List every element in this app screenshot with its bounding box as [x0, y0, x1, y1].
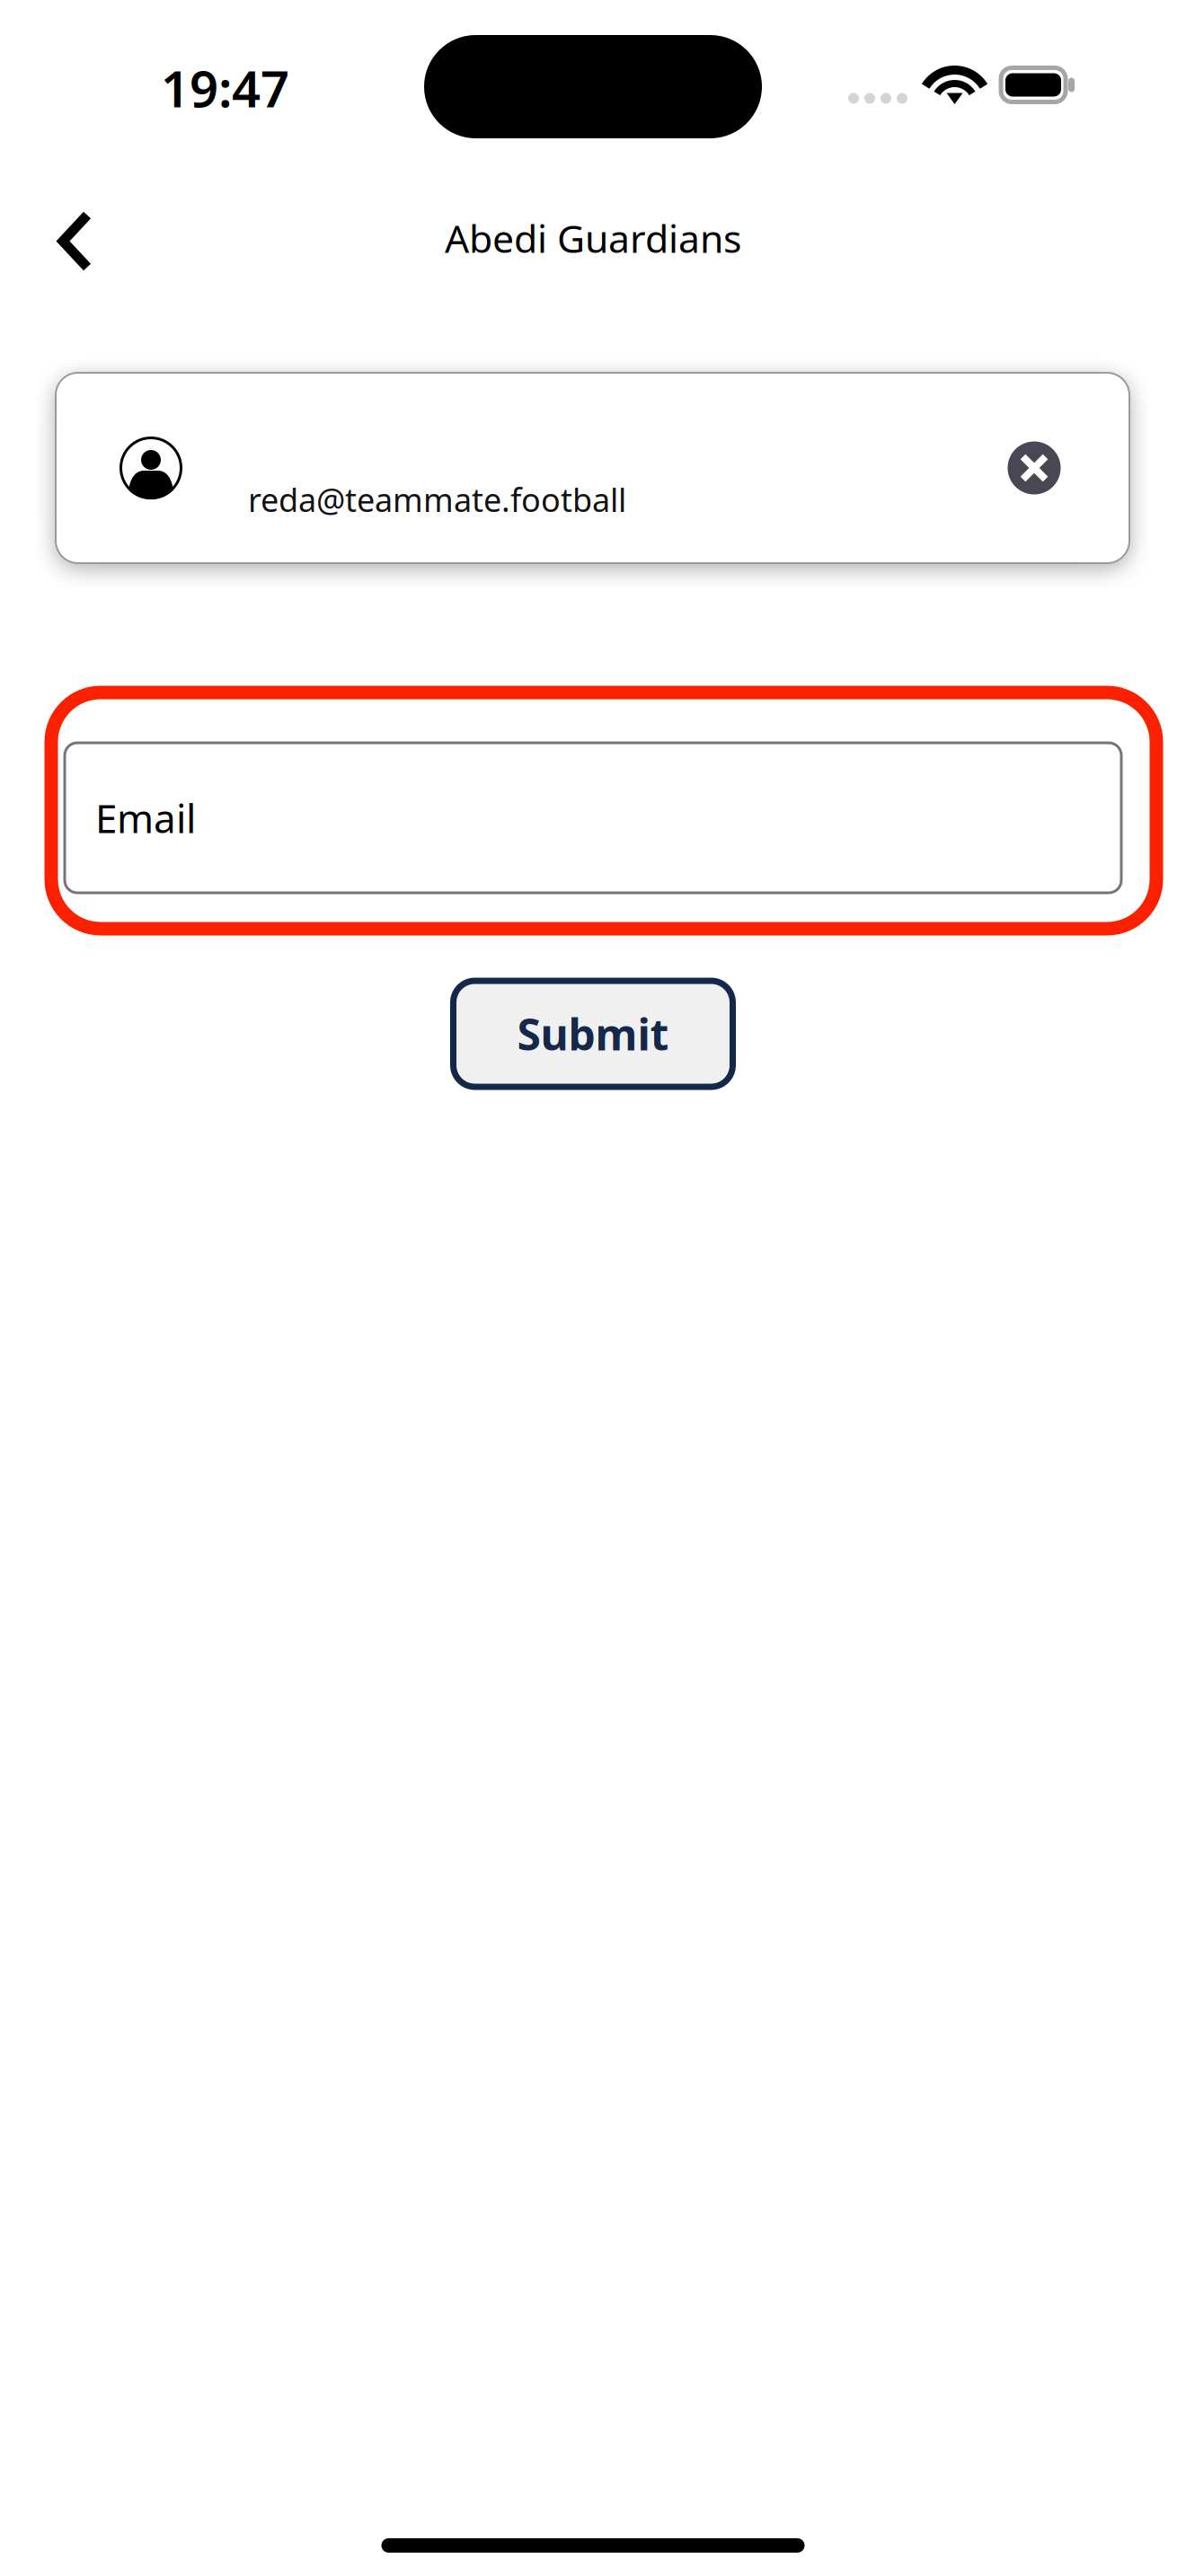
- button[interactable]: Back: [0, 179, 125, 297]
- staticText: reda@teammate.football: [248, 478, 626, 521]
- staticText: Email: [95, 792, 196, 844]
- staticText: Submit: [517, 1005, 669, 1062]
- button[interactable]: Remove recipient: [1008, 442, 1060, 494]
- button[interactable]: Submit: [453, 981, 733, 1087]
- staticText: 19:47: [161, 54, 289, 121]
- staticText: Abedi Guardians: [445, 213, 741, 264]
